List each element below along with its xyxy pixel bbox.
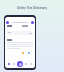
- button[interactable]: Dictionary: [12, 62, 16, 66]
- button[interactable]: Profile: [29, 62, 33, 66]
- button[interactable]: Home: [7, 62, 11, 66]
- staticText: Online Test Dictionary: [0, 6, 64, 10]
- button[interactable]: [22, 25, 28, 27]
- button[interactable]: Favourites: [24, 62, 28, 66]
- button[interactable]: More options: [31, 21, 34, 24]
- button[interactable]: Voice search: [17, 61, 23, 67]
- button[interactable]: Back: [6, 21, 9, 24]
- button[interactable]: [7, 25, 12, 27]
- button[interactable]: [7, 31, 33, 35]
